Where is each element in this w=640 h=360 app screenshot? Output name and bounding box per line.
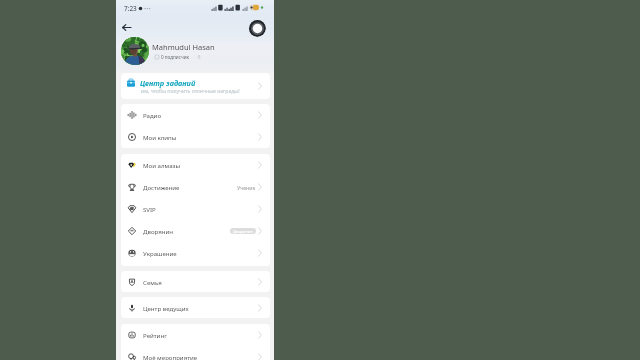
staticText: Мои клипы (143, 133, 177, 141)
staticText: им, чтобы получить отличные награды! (141, 88, 240, 95)
button[interactable]: Моё мероприятие (121, 346, 270, 360)
staticText: Дворянин (143, 227, 173, 235)
button[interactable]: Семья (121, 271, 270, 292)
button[interactable]: Центр заданий (121, 73, 270, 99)
staticText: Украшение (143, 249, 177, 257)
staticText: Mahmudul Hasan (152, 42, 215, 52)
staticText: Достижение (143, 183, 180, 191)
button[interactable]: Мои алмазы (121, 154, 270, 176)
staticText: SVIP (143, 205, 156, 213)
button[interactable]: SVIP (121, 198, 270, 220)
staticText: Мои алмазы (143, 161, 181, 169)
staticText: Моё мероприятие (143, 353, 198, 360)
button[interactable]: Mahmudul Hasan (116, 37, 274, 67)
button[interactable]: Центр ведущих (121, 297, 270, 318)
staticText: Семья (143, 278, 162, 286)
staticText: Центр ведущих (143, 304, 189, 312)
button[interactable]: Back (119, 20, 133, 34)
staticText: Ученик (237, 184, 256, 191)
button[interactable]: Достижение (121, 176, 270, 198)
staticText: 0 подписчик (161, 54, 189, 60)
button[interactable]: Радио (121, 104, 270, 126)
staticText: Центр заданий (140, 78, 196, 88)
button[interactable]: Live stream (248, 19, 266, 37)
button[interactable]: Дворянин (121, 220, 270, 242)
staticText: Рейтинг (143, 331, 167, 339)
staticText: 7:23 (124, 4, 137, 13)
button[interactable]: Мои клипы (121, 126, 270, 148)
button[interactable]: Рейтинг (121, 324, 270, 346)
button[interactable]: Украшение (121, 242, 270, 264)
staticText: Радио (143, 111, 162, 119)
staticText: Дворянин (233, 229, 253, 234)
